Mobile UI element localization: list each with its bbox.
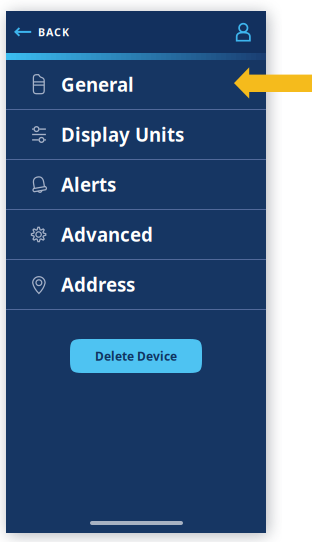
button[interactable]: Profile	[221, 11, 266, 53]
staticText: Address	[61, 272, 135, 297]
button[interactable]: Address	[6, 260, 266, 310]
staticText: Advanced	[61, 222, 153, 247]
staticText: Alerts	[61, 172, 116, 197]
button[interactable]: Alerts	[6, 160, 266, 210]
staticText: Display Units	[61, 122, 184, 147]
button[interactable]: Delete Device	[70, 339, 202, 373]
staticText: Delete Device	[95, 348, 177, 364]
button[interactable]: Display Units	[6, 110, 266, 160]
button[interactable]: Advanced	[6, 210, 266, 260]
button[interactable]: General	[6, 60, 266, 110]
button[interactable]: BACK	[6, 11, 106, 53]
staticText: BACK	[38, 25, 69, 39]
staticText: General	[61, 72, 134, 97]
